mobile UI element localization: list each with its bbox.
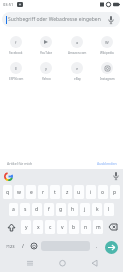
staticText: . (96, 243, 98, 250)
button[interactable]: E (1, 62, 31, 81)
staticText: j (84, 206, 86, 213)
staticText: w (17, 189, 21, 196)
staticText: i (90, 189, 92, 196)
staticText: v (61, 224, 64, 231)
button[interactable]: l (104, 203, 114, 216)
button[interactable]: f (1, 36, 31, 55)
button[interactable]: YouTube (31, 36, 61, 55)
staticText: q (6, 189, 10, 196)
staticText: g (59, 206, 63, 213)
button[interactable]: ?123 (2, 236, 18, 256)
staticText: E (15, 66, 18, 71)
staticText: f (48, 206, 50, 213)
button[interactable]: z (62, 185, 72, 199)
staticText: Amazon.com (68, 51, 87, 55)
button[interactable]: x (33, 220, 43, 234)
staticText: s (24, 206, 27, 213)
button[interactable]: t (50, 185, 60, 199)
staticText: u (77, 189, 81, 196)
button[interactable]: W (92, 36, 122, 55)
staticText: n (84, 224, 88, 231)
staticText: y (25, 224, 28, 231)
staticText: a (12, 206, 15, 213)
button[interactable] (2, 218, 20, 236)
button[interactable]: a (62, 36, 92, 55)
button[interactable]: m (93, 220, 103, 234)
button[interactable]: n (81, 220, 91, 234)
button[interactable]: i (86, 185, 96, 199)
staticText: p (113, 189, 117, 196)
button[interactable]: g (56, 203, 66, 216)
staticText: y (45, 66, 48, 71)
button[interactable] (0, 256, 41, 272)
button[interactable]: k (92, 203, 102, 216)
button[interactable]: u (74, 185, 84, 199)
staticText: z (66, 189, 69, 196)
button[interactable]: c (45, 220, 55, 234)
button[interactable] (113, 172, 119, 180)
staticText: Yahoo (42, 77, 51, 81)
button[interactable]: b (69, 220, 79, 234)
staticText: 03:51 (3, 2, 14, 7)
staticText: m (96, 224, 101, 231)
button[interactable] (82, 256, 123, 272)
staticText: c (49, 224, 52, 231)
staticText: l (108, 206, 110, 213)
staticText: Wikipedia (100, 51, 114, 55)
button[interactable]: q (3, 185, 12, 199)
button[interactable]: / (19, 238, 27, 254)
button[interactable]: o (98, 185, 108, 199)
staticText: t (54, 189, 56, 196)
staticText: Artikel für mich (7, 161, 33, 166)
button[interactable]: j (80, 203, 90, 216)
staticText: o (101, 189, 105, 196)
button[interactable]: h (68, 203, 78, 216)
button[interactable]: s (20, 203, 30, 216)
button[interactable]: . (93, 238, 101, 254)
button[interactable] (104, 218, 121, 236)
staticText: x (37, 224, 40, 231)
button[interactable]: e (26, 185, 36, 199)
staticText: a (76, 40, 79, 45)
button[interactable]: Suchbegriff oder Webadresse eingeben (2, 12, 120, 27)
staticText: ESPN.com (9, 77, 24, 81)
button[interactable]: f (44, 203, 54, 216)
button[interactable] (41, 256, 82, 272)
button[interactable] (102, 238, 121, 256)
staticText: d (35, 206, 39, 213)
button[interactable]: y (31, 62, 61, 81)
staticText: k (96, 206, 99, 213)
staticText: YouTube (40, 51, 53, 55)
staticText: h (71, 206, 75, 213)
button[interactable]: d (32, 203, 42, 216)
staticText: f (15, 40, 17, 45)
button[interactable]: a (9, 203, 18, 216)
button[interactable]: y (21, 220, 31, 234)
staticText: b (72, 224, 76, 231)
button[interactable] (28, 236, 39, 256)
staticText: e (76, 66, 79, 71)
staticText: Instagram (100, 77, 115, 81)
staticText: W (105, 40, 109, 45)
button[interactable]: r (38, 185, 48, 199)
button[interactable]: w (14, 185, 24, 199)
staticText: / (22, 243, 24, 250)
staticText: r (42, 189, 45, 196)
staticText: Facebook (9, 51, 23, 55)
button[interactable]: e (62, 62, 92, 81)
staticText: e (30, 189, 33, 196)
button[interactable]: v (57, 220, 67, 234)
staticText: ?123 (6, 244, 15, 249)
button[interactable]: p (110, 185, 120, 199)
staticText: Suchbegriff oder Webadresse eingeben (8, 16, 101, 23)
staticText: eBay (74, 77, 81, 81)
button[interactable] (4, 172, 13, 181)
button[interactable]: Instagram (92, 62, 122, 81)
button[interactable]: Ausblenden (97, 161, 117, 166)
